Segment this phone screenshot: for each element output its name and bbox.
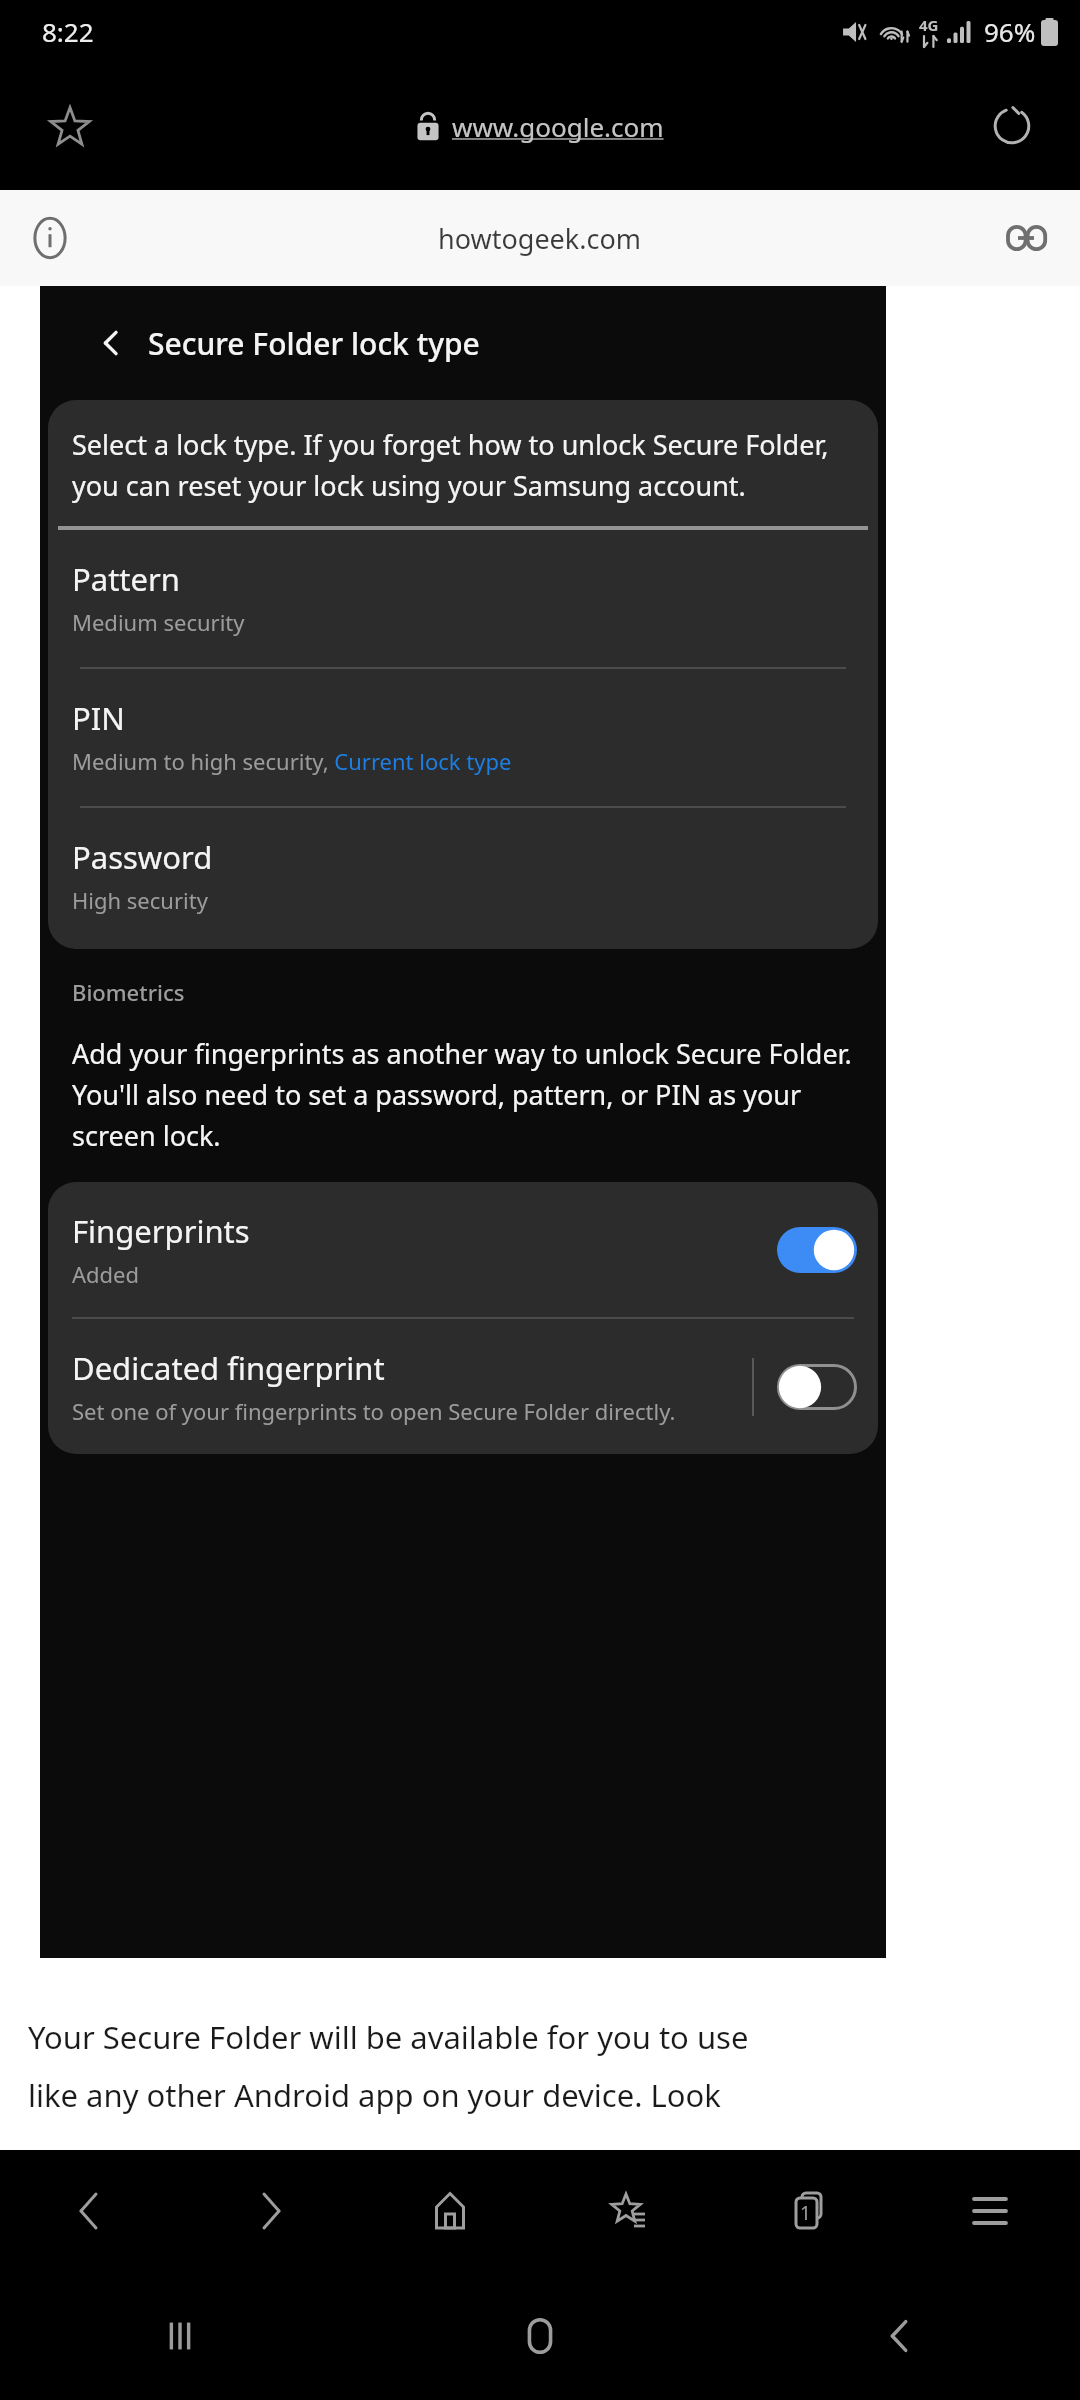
staticText: 1 xyxy=(800,2200,811,2226)
staticText: Added xyxy=(72,1259,140,1289)
staticText: 96% xyxy=(984,14,1036,49)
staticText: Add your fingerprints as another way to … xyxy=(72,1035,870,1154)
staticText: Your Secure Folder will be available for… xyxy=(28,2016,749,2058)
button[interactable]: PIN xyxy=(48,669,878,806)
button[interactable]: Fingerprints, on xyxy=(774,1225,860,1275)
staticText: 4G xyxy=(919,15,939,35)
staticText: Password xyxy=(72,836,213,878)
button[interactable]: Home xyxy=(360,2272,720,2400)
button[interactable]: Pattern xyxy=(48,530,878,667)
button[interactable]: Fingerprints xyxy=(48,1182,878,1317)
staticText: Biometrics xyxy=(72,977,185,1007)
button[interactable]: Back xyxy=(0,2150,180,2272)
staticText: Set one of your fingerprints to open Sec… xyxy=(72,1396,676,1426)
button[interactable]: Forward xyxy=(180,2150,360,2272)
staticText: Medium security xyxy=(72,607,245,637)
staticText: High security xyxy=(72,885,208,915)
button[interactable]: Home xyxy=(360,2150,540,2272)
staticText: Select a lock type. If you forget how to… xyxy=(72,426,856,504)
button[interactable]: Bookmark page xyxy=(24,80,116,172)
staticText: like any other Android app on your devic… xyxy=(28,2074,721,2116)
button[interactable]: Copy link xyxy=(988,200,1064,276)
button[interactable]: Tabs xyxy=(720,2150,900,2272)
staticText: Medium to high security, Current lock ty… xyxy=(72,746,512,776)
button[interactable]: Dedicated fingerprint, off xyxy=(774,1362,860,1412)
staticText: Secure Folder lock type xyxy=(148,323,480,364)
staticText: Fingerprints xyxy=(72,1210,250,1252)
button[interactable]: Reload page xyxy=(966,80,1058,172)
staticText: Pattern xyxy=(72,558,180,600)
button[interactable]: Dedicated fingerprint xyxy=(48,1319,878,1454)
button[interactable]: Password xyxy=(48,808,878,949)
button[interactable]: Site information xyxy=(12,200,88,276)
staticText: howtogeek.com xyxy=(438,220,642,257)
staticText: www.google.com xyxy=(452,109,664,144)
button[interactable]: Bookmarks xyxy=(540,2150,720,2272)
staticText: PIN xyxy=(72,697,125,739)
button[interactable]: Recent apps xyxy=(0,2272,360,2400)
button[interactable]: Navigate up xyxy=(84,316,138,370)
button[interactable]: Menu xyxy=(900,2150,1080,2272)
staticText: 8:22 xyxy=(42,14,94,49)
button[interactable]: Back xyxy=(720,2272,1080,2400)
staticText: Dedicated fingerprint xyxy=(72,1347,385,1389)
